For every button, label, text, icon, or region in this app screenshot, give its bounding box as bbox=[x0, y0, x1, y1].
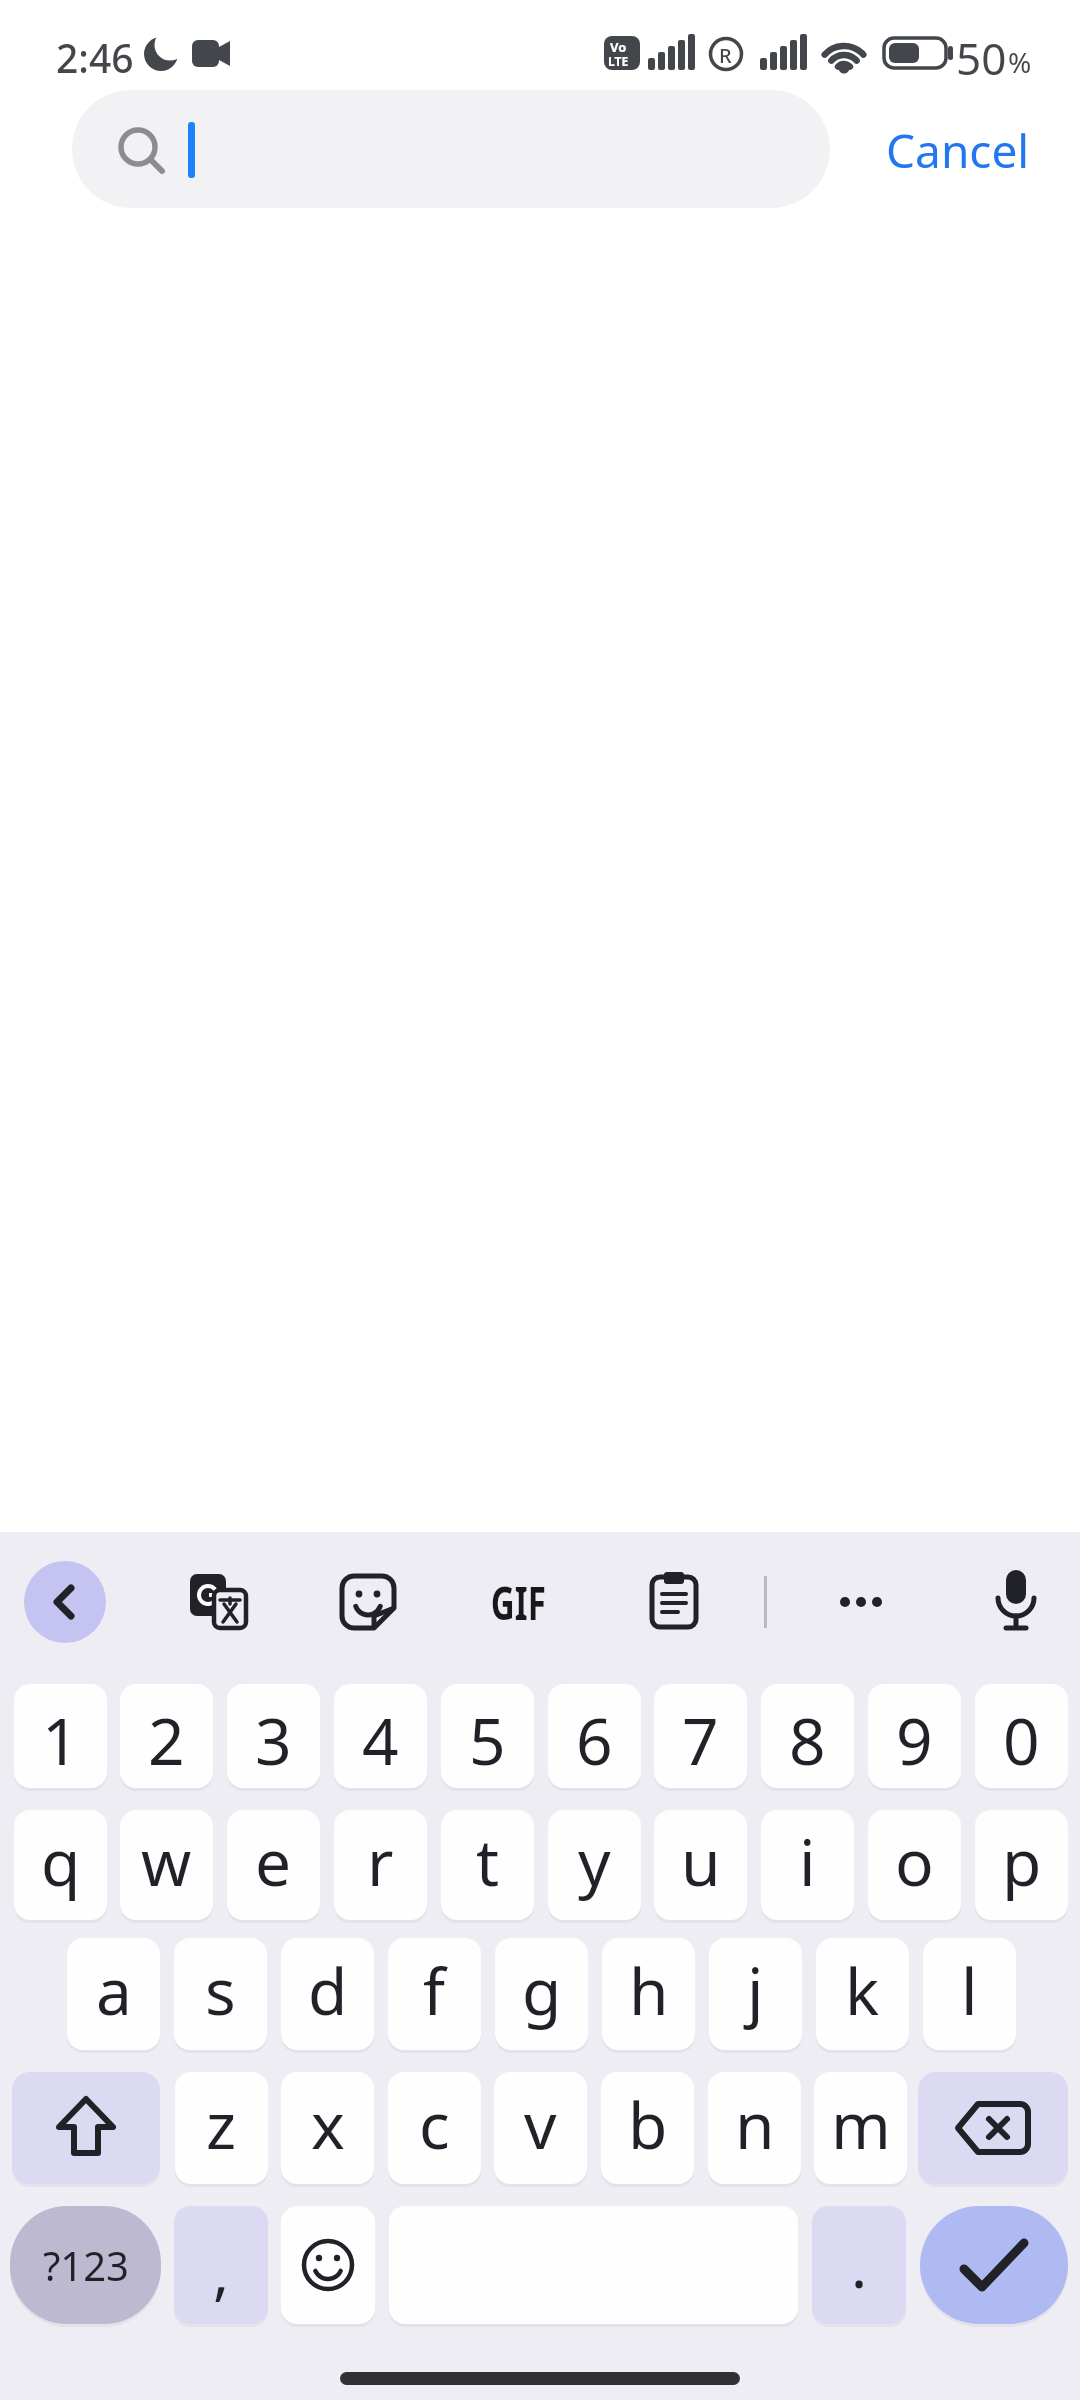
staticText: R bbox=[719, 42, 732, 69]
button[interactable] bbox=[338, 1572, 398, 1632]
staticText: r bbox=[367, 1818, 394, 1905]
button[interactable] bbox=[72, 90, 830, 208]
button[interactable]: m bbox=[814, 2072, 907, 2184]
staticText: 4 bbox=[362, 1697, 399, 1784]
button[interactable] bbox=[825, 1570, 897, 1634]
button[interactable] bbox=[918, 2072, 1068, 2184]
staticText: y bbox=[578, 1818, 611, 1905]
staticText: a bbox=[96, 1947, 132, 2034]
staticText: 7 bbox=[682, 1697, 719, 1784]
button[interactable]: w bbox=[120, 1810, 213, 1920]
staticText: m bbox=[831, 2081, 891, 2168]
staticText: g bbox=[522, 1947, 562, 2034]
button[interactable]: z bbox=[175, 2072, 268, 2184]
button[interactable]: e bbox=[227, 1810, 320, 1920]
button[interactable]: 8 bbox=[761, 1684, 854, 1788]
staticText: 50 bbox=[956, 28, 1007, 88]
staticText: 3 bbox=[255, 1697, 292, 1784]
button[interactable]: 0 bbox=[975, 1684, 1068, 1788]
button[interactable] bbox=[920, 2206, 1068, 2324]
staticText: Cancel bbox=[886, 119, 1030, 182]
button[interactable]: 6 bbox=[548, 1684, 641, 1788]
staticText: t bbox=[476, 1818, 500, 1905]
button[interactable]: c bbox=[388, 2072, 481, 2184]
button[interactable]: GIF bbox=[462, 1570, 574, 1634]
button[interactable]: p bbox=[975, 1810, 1068, 1920]
button[interactable]: 5 bbox=[441, 1684, 534, 1788]
button[interactable]: d bbox=[281, 1938, 374, 2050]
button[interactable]: 1 bbox=[14, 1684, 107, 1788]
staticText: 1 bbox=[42, 1697, 79, 1784]
staticText: v bbox=[524, 2081, 557, 2168]
button[interactable]: s bbox=[174, 1938, 267, 2050]
button[interactable]: 2 bbox=[120, 1684, 213, 1788]
button[interactable]: q bbox=[14, 1810, 107, 1920]
button[interactable]: x bbox=[281, 2072, 374, 2184]
staticText: c bbox=[419, 2081, 450, 2168]
staticText: p bbox=[1002, 1818, 1042, 1905]
staticText: q bbox=[41, 1818, 81, 1905]
staticText: Vo bbox=[610, 38, 627, 56]
staticText: i bbox=[799, 1818, 816, 1905]
button[interactable]: j bbox=[709, 1938, 802, 2050]
staticText: e bbox=[255, 1818, 292, 1905]
button[interactable]: l bbox=[923, 1938, 1016, 2050]
staticText: 5 bbox=[469, 1697, 506, 1784]
button[interactable]: . bbox=[812, 2206, 906, 2324]
staticText: n bbox=[735, 2081, 775, 2168]
staticText: 6 bbox=[576, 1697, 613, 1784]
button[interactable]: Cancel bbox=[886, 112, 1042, 188]
button[interactable] bbox=[188, 1572, 248, 1632]
staticText: GIF bbox=[491, 1571, 546, 1634]
staticText: k bbox=[845, 1947, 880, 2034]
button[interactable]: y bbox=[548, 1810, 641, 1920]
button[interactable] bbox=[24, 1561, 106, 1643]
button[interactable]: r bbox=[334, 1810, 427, 1920]
button[interactable] bbox=[281, 2206, 375, 2324]
button[interactable] bbox=[986, 1568, 1046, 1636]
button[interactable]: 7 bbox=[654, 1684, 747, 1788]
staticText: . bbox=[851, 2224, 868, 2306]
button[interactable]: a bbox=[67, 1938, 160, 2050]
button[interactable]: 4 bbox=[334, 1684, 427, 1788]
staticText: s bbox=[205, 1947, 236, 2034]
button[interactable]: o bbox=[868, 1810, 961, 1920]
button[interactable]: ?123 bbox=[10, 2206, 161, 2324]
staticText: x bbox=[311, 2081, 345, 2168]
button[interactable]: h bbox=[602, 1938, 695, 2050]
staticText: % bbox=[1008, 43, 1032, 81]
staticText: 9 bbox=[896, 1697, 933, 1784]
button[interactable]: 9 bbox=[868, 1684, 961, 1788]
staticText: w bbox=[141, 1818, 192, 1905]
button[interactable]: n bbox=[708, 2072, 801, 2184]
staticText: j bbox=[747, 1947, 764, 2034]
button[interactable] bbox=[12, 2072, 160, 2184]
staticText: z bbox=[206, 2081, 237, 2168]
button[interactable]: v bbox=[494, 2072, 587, 2184]
button[interactable]: f bbox=[388, 1938, 481, 2050]
button[interactable]: k bbox=[816, 1938, 909, 2050]
staticText: 8 bbox=[789, 1697, 826, 1784]
staticText: f bbox=[423, 1947, 446, 2034]
staticText: h bbox=[629, 1947, 669, 2034]
staticText: b bbox=[628, 2081, 668, 2168]
staticText: l bbox=[961, 1947, 978, 2034]
button[interactable]: b bbox=[601, 2072, 694, 2184]
button[interactable]: , bbox=[174, 2206, 268, 2324]
staticText: d bbox=[308, 1947, 348, 2034]
staticText: o bbox=[895, 1818, 934, 1905]
button[interactable]: g bbox=[495, 1938, 588, 2050]
staticText: , bbox=[213, 2230, 230, 2312]
staticText: 2:46 bbox=[56, 31, 134, 84]
button[interactable] bbox=[644, 1570, 704, 1630]
button[interactable]: i bbox=[761, 1810, 854, 1920]
staticText: ?123 bbox=[43, 2238, 129, 2292]
button[interactable]: 3 bbox=[227, 1684, 320, 1788]
button[interactable]: t bbox=[441, 1810, 534, 1920]
staticText: LTE bbox=[608, 53, 629, 69]
staticText: 0 bbox=[1003, 1697, 1040, 1784]
staticText: u bbox=[681, 1818, 721, 1905]
button[interactable]: u bbox=[654, 1810, 747, 1920]
staticText: 2 bbox=[148, 1697, 185, 1784]
